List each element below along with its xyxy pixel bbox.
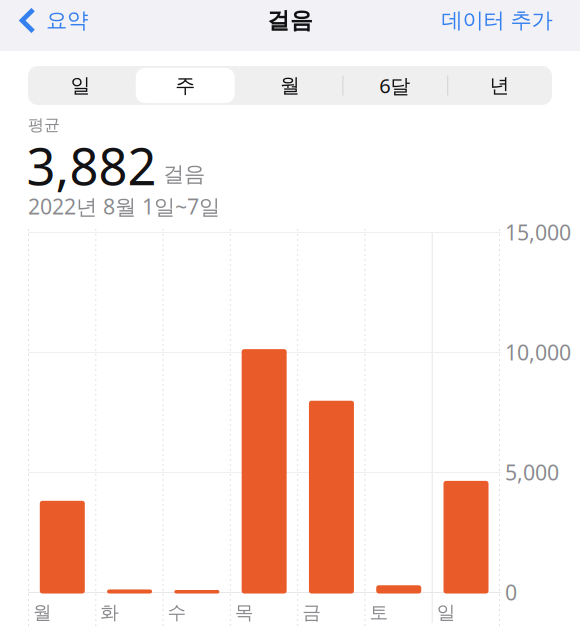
staticText: 3,882 [26,132,156,199]
button[interactable]: 년 [447,66,552,105]
button[interactable]: 일 [28,66,133,105]
staticText: 평균 [28,115,60,135]
button[interactable]: 데이터 추가 [421,0,580,41]
staticText: 요약 [46,7,88,34]
button[interactable]: 주 [133,66,238,105]
button[interactable]: 6달 [342,66,447,105]
staticText: 주 [175,73,195,98]
staticText: 15,000 [505,218,571,246]
staticText: 2022년 8월 1일~7일 [28,192,220,220]
staticText: 일 [437,601,456,624]
staticText: 걸음 [267,7,313,34]
staticText: 10,000 [505,338,571,366]
staticText: 월 [280,73,300,98]
staticText: 6달 [379,72,410,99]
staticText: 데이터 추가 [441,7,552,34]
staticText: 일 [70,73,90,98]
staticText: 수 [168,601,187,624]
button[interactable]: 요약 [0,0,100,41]
staticText: 0 [505,578,517,606]
staticText: 화 [100,601,119,624]
staticText: 토 [369,601,388,624]
staticText: 걸음 [163,161,205,187]
button[interactable]: 월 [238,66,342,105]
staticText: 금 [302,601,321,624]
staticText: 년 [490,73,510,98]
staticText: 월 [33,601,52,624]
staticText: 5,000 [505,458,559,486]
staticText: 목 [235,601,254,624]
